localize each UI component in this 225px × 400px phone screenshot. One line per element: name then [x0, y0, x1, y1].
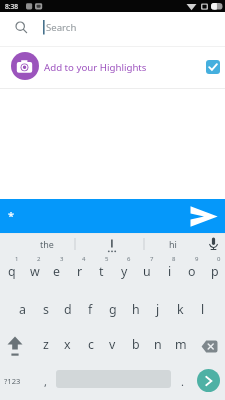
staticText: 6: [127, 255, 131, 263]
button[interactable]: .: [174, 366, 190, 396]
button[interactable]: [2, 331, 28, 361]
staticText: f: [88, 301, 93, 318]
button[interactable]: [0, 12, 225, 46]
button[interactable]: y: [113, 254, 136, 288]
staticText: b: [132, 336, 140, 353]
button[interactable]: j: [146, 292, 169, 326]
staticText: j: [156, 301, 160, 318]
button[interactable]: [196, 331, 223, 361]
button[interactable]: ,: [36, 366, 54, 396]
button[interactable]: t: [90, 254, 113, 288]
button[interactable]: the: [24, 234, 70, 253]
staticText: g: [109, 301, 117, 318]
staticText: d: [64, 301, 72, 318]
staticText: u: [143, 263, 151, 280]
button[interactable]: x: [56, 327, 79, 361]
button[interactable]: q: [0, 254, 23, 288]
staticText: y: [121, 263, 128, 280]
staticText: t: [99, 263, 104, 280]
button[interactable]: h: [124, 292, 147, 326]
staticText: a: [19, 301, 26, 318]
staticText: 5: [105, 255, 109, 263]
button[interactable]: c: [79, 327, 102, 361]
staticText: o: [188, 263, 196, 280]
staticText: z: [43, 336, 49, 353]
staticText: k: [177, 301, 184, 318]
button[interactable]: z: [34, 327, 57, 361]
staticText: ?123: [4, 376, 21, 386]
button[interactable]: k: [169, 292, 192, 326]
staticText: 9: [195, 255, 199, 263]
button[interactable]: i: [158, 254, 181, 288]
staticText: .: [181, 374, 184, 389]
staticText: 0: [217, 255, 221, 263]
button[interactable]: m: [169, 327, 192, 361]
staticText: n: [154, 336, 162, 353]
button[interactable]: d: [56, 292, 79, 326]
button[interactable]: o: [180, 254, 203, 288]
staticText: 8:38: [5, 2, 19, 11]
staticText: the: [40, 238, 54, 250]
button[interactable]: [188, 203, 220, 229]
staticText: c: [88, 336, 94, 353]
button[interactable]: s: [34, 292, 57, 326]
staticText: p: [211, 263, 219, 280]
button[interactable]: [206, 60, 220, 74]
staticText: 7: [150, 255, 154, 263]
staticText: x: [64, 336, 71, 353]
staticText: w: [30, 263, 40, 280]
button[interactable]: p: [203, 254, 225, 288]
staticText: 4: [82, 255, 86, 263]
staticText: Add to your Highlights: [44, 61, 147, 74]
staticText: 2: [37, 255, 41, 263]
button[interactable]: g: [101, 292, 124, 326]
staticText: ,: [44, 374, 47, 389]
button[interactable]: n: [146, 327, 169, 361]
button[interactable]: v: [101, 327, 124, 361]
staticText: e: [53, 263, 60, 280]
button[interactable]: r: [68, 254, 91, 288]
button[interactable]: [90, 234, 134, 253]
staticText: hi: [169, 238, 177, 250]
button[interactable]: [0, 47, 225, 88]
button[interactable]: [197, 369, 220, 392]
button[interactable]: [0, 199, 225, 233]
staticText: 3: [60, 255, 64, 263]
staticText: v: [109, 336, 116, 353]
staticText: 1: [15, 255, 19, 263]
button[interactable]: l: [191, 292, 214, 326]
staticText: l: [201, 301, 205, 318]
staticText: *: [8, 208, 15, 223]
staticText: Search: [46, 21, 77, 34]
button[interactable]: ?123: [0, 366, 25, 396]
button[interactable]: w: [23, 254, 46, 288]
staticText: h: [132, 301, 140, 318]
button[interactable]: a: [11, 292, 34, 326]
staticText: r: [77, 263, 83, 280]
button[interactable]: e: [45, 254, 68, 288]
button[interactable]: [204, 235, 222, 253]
button[interactable]: b: [124, 327, 147, 361]
button[interactable]: f: [79, 292, 102, 326]
staticText: q: [8, 263, 16, 280]
button[interactable]: u: [135, 254, 158, 288]
staticText: m: [175, 336, 187, 353]
staticText: s: [43, 301, 49, 318]
staticText: 8: [172, 255, 176, 263]
staticText: i: [168, 263, 172, 280]
button[interactable]: hi: [150, 234, 196, 253]
